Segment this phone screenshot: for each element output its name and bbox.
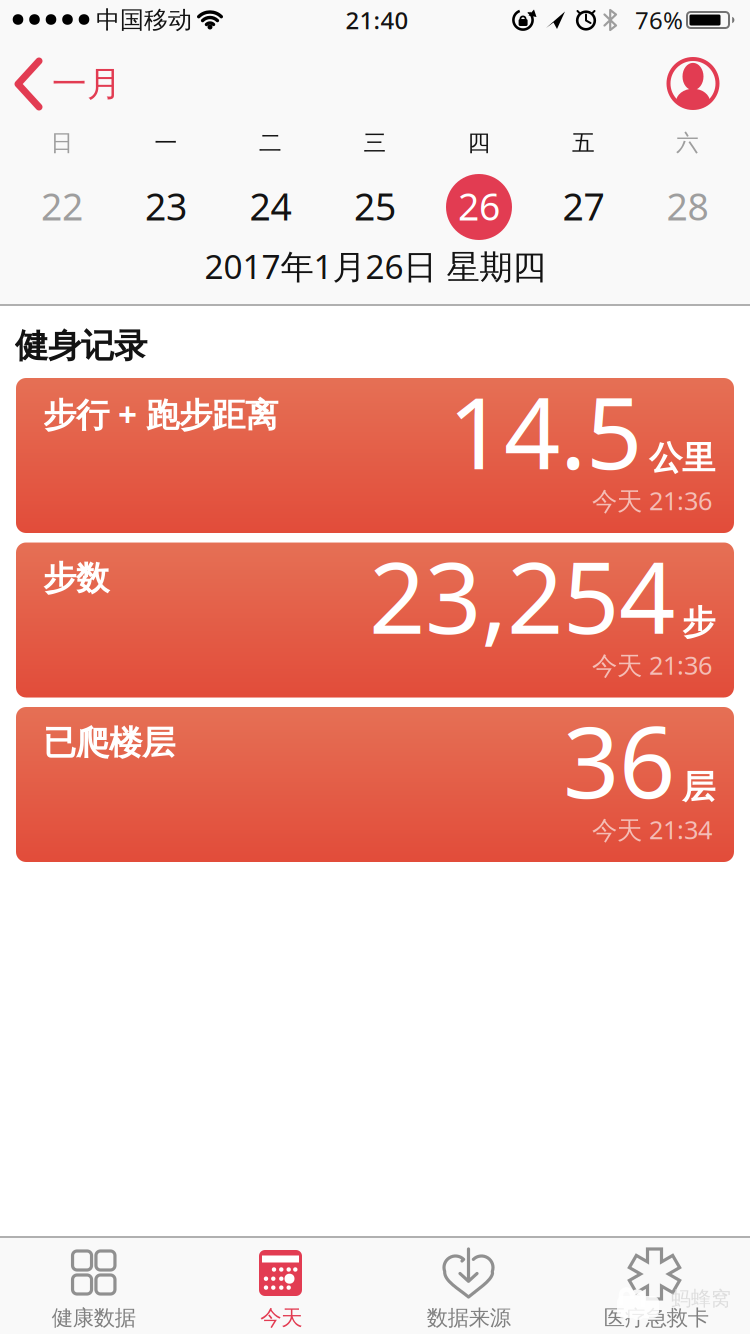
staticText: 五	[572, 129, 595, 157]
staticText: 今天 21:36	[592, 648, 712, 682]
staticText: 步	[682, 602, 715, 643]
staticText: 健康数据	[52, 1305, 136, 1331]
staticText: 14.5	[448, 365, 642, 496]
staticText: 公里	[649, 438, 715, 479]
staticText: 26	[458, 181, 500, 231]
staticText: 六	[676, 129, 699, 157]
staticText: 数据来源	[427, 1305, 511, 1331]
staticText: 已爬楼层	[43, 722, 175, 763]
staticText: 27	[562, 181, 604, 231]
staticText: 22	[41, 181, 83, 231]
staticText: 23	[145, 181, 187, 231]
staticText: 今天 21:36	[592, 484, 712, 517]
staticText: 一月	[52, 63, 122, 105]
staticText: 24	[249, 181, 291, 231]
staticText: 层	[682, 767, 715, 808]
staticText: 健身记录	[15, 325, 147, 366]
staticText: 四	[467, 129, 490, 157]
staticText: 一	[154, 129, 177, 157]
staticText: 医疗急救卡	[604, 1305, 709, 1331]
staticText: 25	[354, 181, 396, 231]
staticText: 今天 21:34	[592, 813, 712, 846]
staticText: 步行 + 跑步距离	[43, 392, 278, 436]
staticText: 今天	[260, 1305, 302, 1331]
staticText: 二	[259, 129, 282, 157]
staticText: 23,254	[369, 530, 675, 661]
staticText: 三	[363, 129, 386, 157]
staticText: 步数	[43, 558, 109, 599]
staticText: 中国移动	[96, 5, 192, 35]
staticText: 2017年1月26日 星期四	[204, 244, 545, 288]
staticText: 36	[563, 694, 675, 825]
staticText: 76%	[635, 4, 683, 36]
staticText: 28	[666, 181, 708, 231]
staticText: 21:40	[345, 4, 408, 36]
staticText: 日	[50, 129, 73, 157]
staticText: 蚂蜂窝	[671, 1286, 731, 1311]
